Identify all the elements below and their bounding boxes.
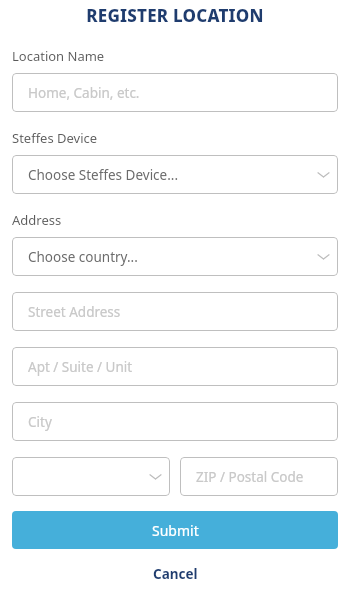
staticText: Cancel xyxy=(153,565,198,583)
staticText: Address xyxy=(12,211,62,229)
staticText: City xyxy=(28,413,52,431)
button[interactable]: Select state xyxy=(12,457,170,496)
staticText: Choose country... xyxy=(28,248,138,266)
staticText: Street Address xyxy=(28,303,121,321)
staticText: Home, Cabin, etc. xyxy=(28,84,140,102)
button[interactable]: Home, Cabin, etc. xyxy=(12,73,338,112)
button[interactable]: City xyxy=(12,402,338,441)
button[interactable]: Street Address xyxy=(12,292,338,331)
button[interactable]: Cancel xyxy=(12,562,338,586)
staticText: Submit xyxy=(152,521,199,540)
button[interactable]: ZIP / Postal Code xyxy=(180,457,338,496)
staticText: Location Name xyxy=(12,47,105,65)
staticText: REGISTER LOCATION xyxy=(0,4,350,27)
button[interactable]: Choose country... xyxy=(12,237,338,276)
staticText: ZIP / Postal Code xyxy=(196,468,304,486)
staticText: Apt / Suite / Unit xyxy=(28,358,133,376)
staticText: Steffes Device xyxy=(12,129,98,147)
button[interactable]: Submit xyxy=(12,511,338,549)
button[interactable]: Apt / Suite / Unit xyxy=(12,347,338,386)
staticText: Choose Steffes Device... xyxy=(28,166,179,184)
button[interactable]: Choose Steffes Device... xyxy=(12,155,338,194)
